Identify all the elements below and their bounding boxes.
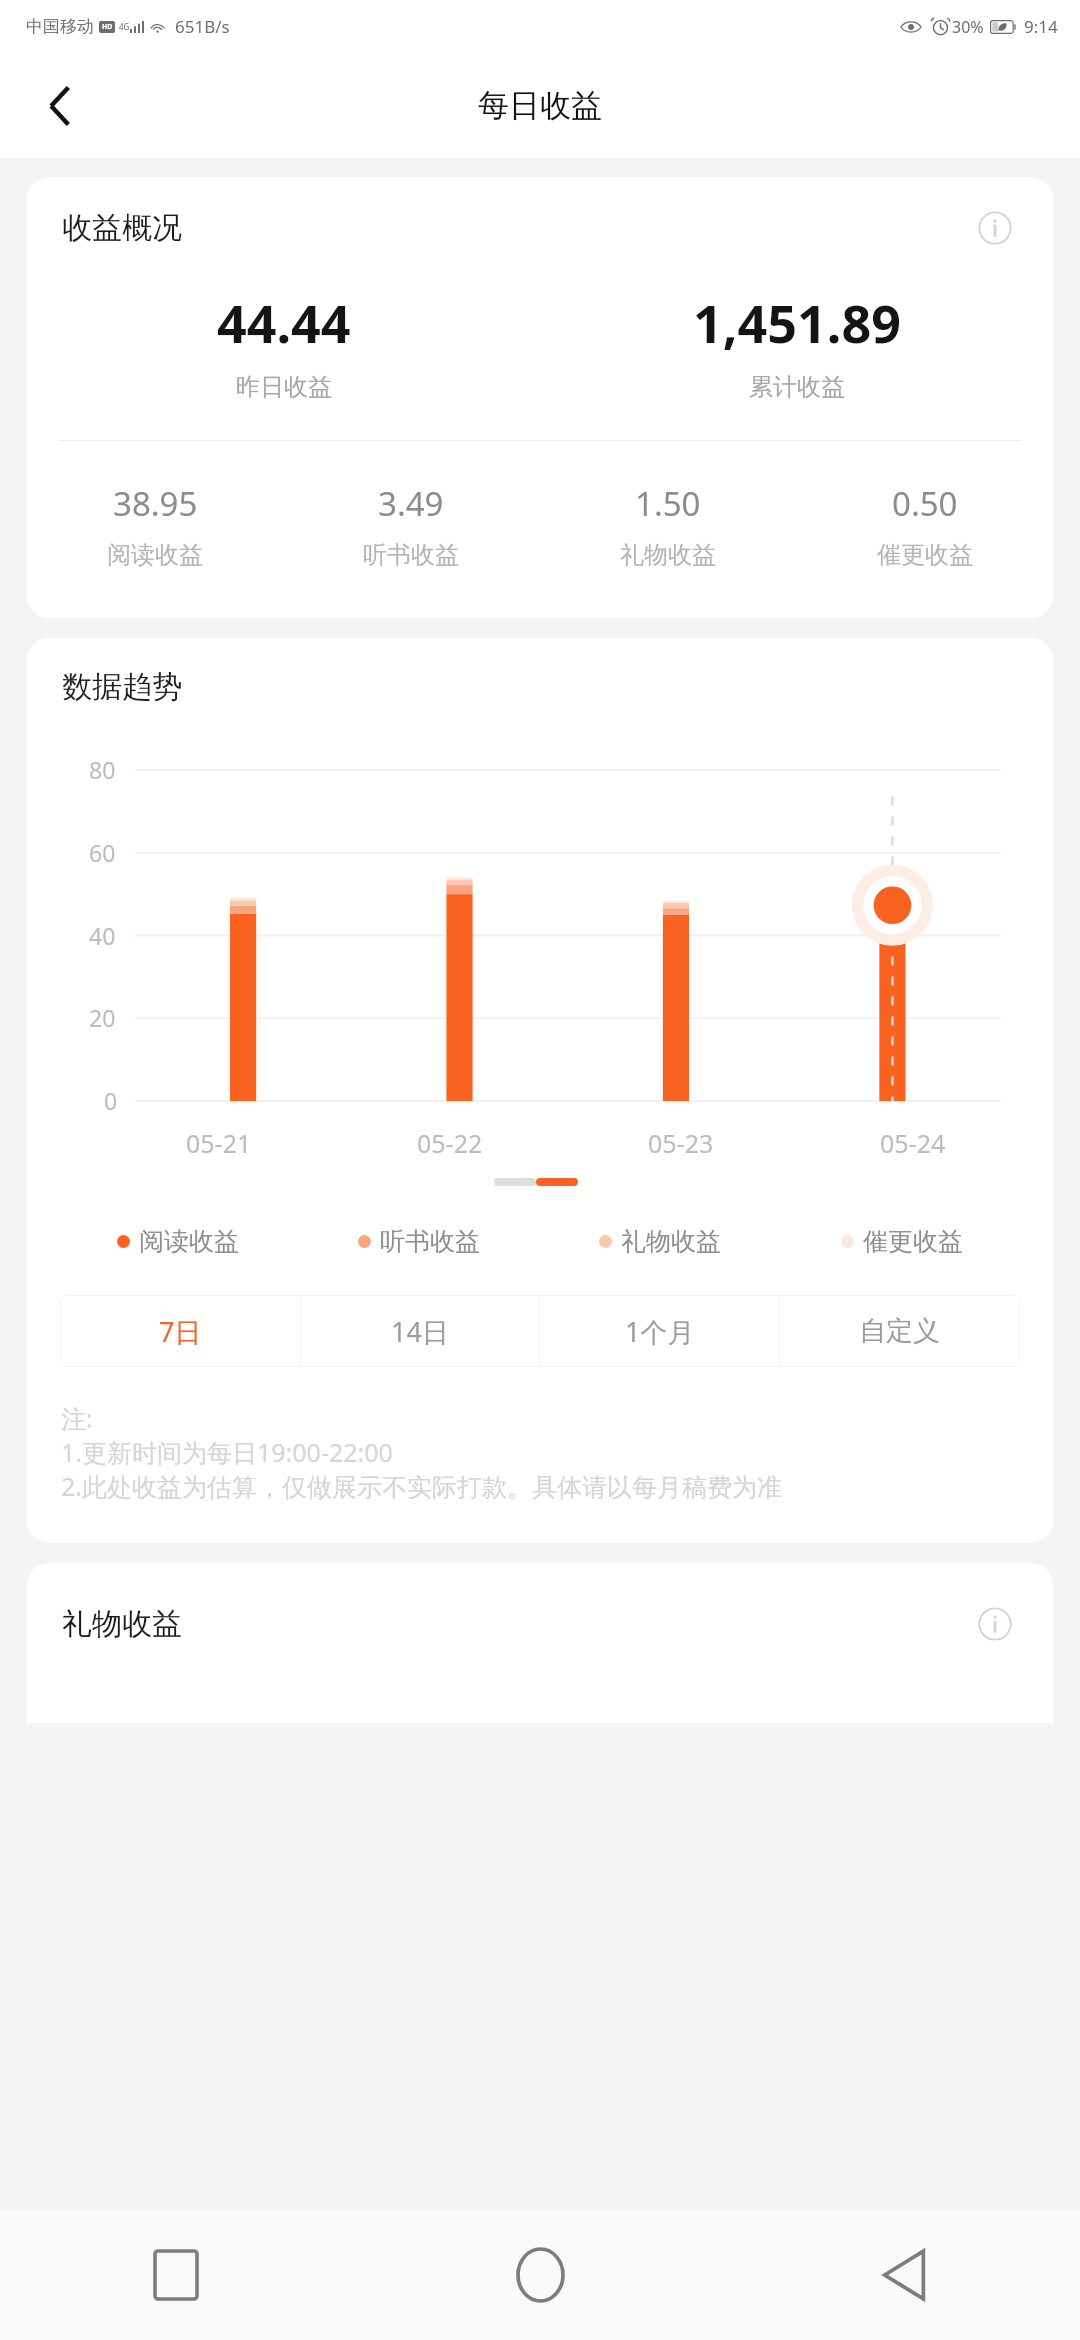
staticText: 礼物收益 (620, 540, 716, 570)
staticText: 催更收益 (863, 1226, 963, 1257)
staticText: 2.此处收益为估算，仅做展示不实际打款。具体请以每月稿费为准 (61, 1469, 783, 1503)
staticText: 数据趋势 (62, 668, 182, 706)
button[interactable]: 14日 (301, 1296, 539, 1366)
staticText: 05-21 (186, 1126, 252, 1160)
staticText: 注: (61, 1401, 93, 1435)
button[interactable]: Home (494, 2229, 586, 2321)
staticText: 38.95 (113, 481, 198, 526)
staticText: 20 (89, 1002, 116, 1033)
staticText: 80 (89, 754, 116, 785)
staticText: 中国移动 (26, 16, 94, 37)
staticText: 05-23 (648, 1126, 714, 1160)
staticText: 40 (89, 920, 116, 951)
staticText: 30% (952, 16, 984, 38)
staticText: 催更收益 (877, 540, 973, 570)
staticText: 听书收益 (380, 1226, 480, 1257)
staticText: 44.44 (217, 287, 351, 358)
button[interactable]: Back (30, 76, 90, 136)
staticText: 14日 (391, 1313, 449, 1350)
button[interactable]: 7日 (61, 1296, 300, 1366)
staticText: 651B/s (175, 15, 230, 38)
staticText: 1个月 (625, 1313, 695, 1350)
staticText: 9:14 (1024, 15, 1058, 38)
button[interactable]: 1个月 (540, 1296, 779, 1366)
button[interactable]: Recent apps (130, 2229, 222, 2321)
staticText: 昨日收益 (236, 372, 332, 402)
staticText: 7日 (159, 1313, 202, 1350)
staticText: 礼物收益 (62, 1605, 182, 1643)
button[interactable]: Back (858, 2229, 950, 2321)
staticText: 05-24 (880, 1126, 946, 1160)
staticText: 礼物收益 (621, 1226, 721, 1257)
staticText: 收益概况 (62, 209, 182, 247)
staticText: 1,451.89 (693, 287, 901, 358)
button[interactable]: 自定义 (780, 1296, 1019, 1366)
staticText: 3.49 (378, 481, 444, 526)
staticText: HD (102, 22, 113, 32)
button[interactable]: Info (972, 1601, 1018, 1647)
staticText: 4G (119, 21, 130, 32)
staticText: 1.更新时间为每日19:00-22:00 (61, 1435, 393, 1469)
staticText: 0 (104, 1085, 118, 1116)
button[interactable]: Info (972, 205, 1018, 251)
staticText: 60 (89, 837, 116, 868)
staticText: 阅读收益 (139, 1226, 239, 1257)
staticText: 阅读收益 (107, 540, 203, 570)
staticText: 05-22 (417, 1126, 483, 1160)
staticText: 自定义 (859, 1314, 940, 1348)
staticText: 0.50 (892, 481, 958, 526)
staticText: 听书收益 (363, 540, 459, 570)
staticText: 每日收益 (478, 86, 602, 125)
staticText: 累计收益 (749, 372, 845, 402)
staticText: 1.50 (635, 481, 701, 526)
